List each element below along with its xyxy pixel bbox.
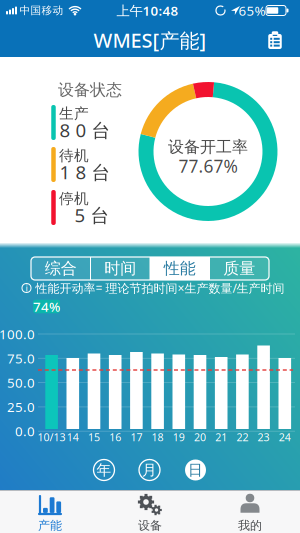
staticText: 8 0 台 bbox=[59, 118, 110, 142]
staticText: 设备 bbox=[138, 518, 162, 533]
staticText: 综合 bbox=[45, 259, 77, 278]
staticText: 77.67% bbox=[178, 154, 237, 177]
button[interactable]: 年 bbox=[93, 459, 114, 480]
staticText: 17 bbox=[130, 430, 142, 444]
button[interactable]: 产能 bbox=[0, 490, 100, 533]
staticText: 25.0 bbox=[7, 398, 35, 416]
staticText: 20 bbox=[194, 430, 206, 444]
button[interactable]: 日 bbox=[185, 459, 206, 480]
staticText: 18 bbox=[152, 430, 164, 444]
staticText: 50.0 bbox=[7, 374, 35, 391]
staticText: 24 bbox=[279, 430, 291, 444]
staticText: 22 bbox=[236, 430, 248, 444]
staticText: 5 台 bbox=[74, 203, 109, 227]
staticText: 15 bbox=[88, 430, 100, 444]
staticText: 14 bbox=[67, 430, 79, 444]
staticText: 1 8 台 bbox=[59, 160, 110, 184]
staticText: 时间 bbox=[104, 259, 136, 278]
staticText: 年 bbox=[96, 461, 111, 479]
staticText: 16 bbox=[109, 430, 121, 444]
staticText: 月 bbox=[142, 461, 157, 479]
staticText: 10/13 bbox=[38, 430, 66, 444]
button[interactable]: 性能 bbox=[150, 257, 209, 280]
button[interactable]: 月 bbox=[139, 459, 160, 480]
staticText: 75.0 bbox=[7, 349, 35, 367]
staticText: 74% bbox=[33, 298, 60, 315]
staticText: 上午10:48 bbox=[116, 2, 178, 19]
staticText: 日 bbox=[188, 461, 203, 479]
button[interactable]: 综合 bbox=[31, 257, 90, 280]
staticText: 性能开动率= 理论节拍时间×生产数量/生产时间 bbox=[35, 280, 284, 296]
staticText: 待机 bbox=[59, 146, 89, 164]
staticText: 23 bbox=[258, 430, 270, 444]
staticText: 我的 bbox=[238, 518, 262, 533]
staticText: 65% bbox=[238, 2, 265, 19]
staticText: 停机 bbox=[59, 189, 89, 207]
staticText: 设备开工率 bbox=[168, 137, 248, 157]
staticText: 产能 bbox=[38, 518, 62, 533]
button[interactable]: 时间 bbox=[90, 257, 150, 280]
button[interactable]: 报表 bbox=[261, 22, 289, 55]
staticText: 设备状态 bbox=[58, 80, 122, 100]
staticText: 19 bbox=[173, 430, 185, 444]
staticText: WMES[产能] bbox=[93, 27, 206, 53]
staticText: 质量 bbox=[223, 259, 255, 278]
button[interactable]: 我的 bbox=[200, 490, 300, 533]
staticText: 21 bbox=[215, 430, 227, 444]
staticText: 100.0 bbox=[0, 325, 35, 343]
staticText: i bbox=[25, 282, 27, 294]
staticText: 0.0 bbox=[15, 422, 35, 440]
button[interactable]: 质量 bbox=[209, 257, 269, 280]
button[interactable]: 设备 bbox=[100, 490, 200, 533]
staticText: 生产 bbox=[59, 104, 89, 122]
staticText: 性能 bbox=[164, 259, 196, 278]
staticText: 中国移动 bbox=[19, 4, 63, 17]
